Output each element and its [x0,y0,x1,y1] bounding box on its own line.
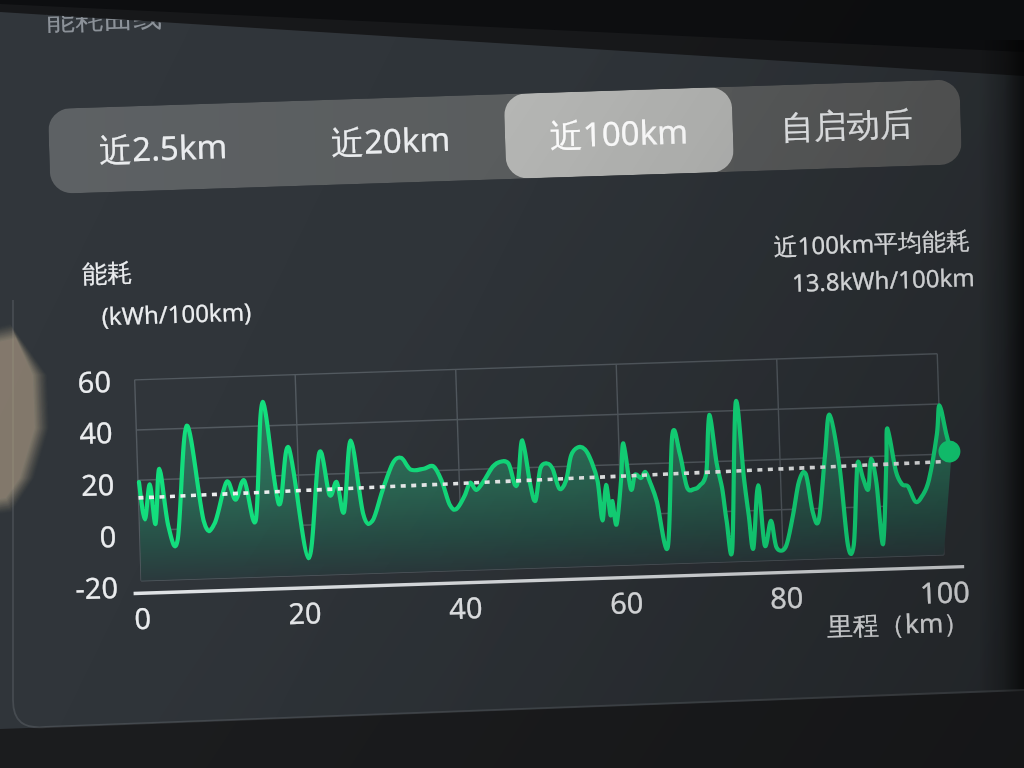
staticText: 60 [609,582,645,622]
staticText: 自启动后 [780,103,913,149]
button[interactable]: 近2.5km [48,101,278,194]
staticText: 近2.5km [98,123,229,172]
staticText: 近100km [549,108,690,158]
staticText: 13.8kWh/100km [791,260,975,299]
staticText: 0 [134,598,152,637]
staticText: 20 [288,592,323,632]
button[interactable]: 近100km [504,87,734,179]
staticText: -20 [75,567,119,607]
button[interactable]: 近20km [276,94,506,186]
staticText: 100 [919,571,970,612]
button[interactable]: 自启动后 [731,79,962,172]
staticText: 40 [79,412,114,452]
staticText: 能耗曲线 [45,0,162,39]
staticText: 0 [99,516,117,555]
staticText: 60 [77,361,112,401]
staticText: 80 [769,577,805,617]
staticText: 近20km [330,116,452,165]
staticText: 40 [449,587,484,627]
staticText: 里程（km） [826,603,970,644]
staticText: 20 [80,464,116,504]
staticText: (kWh/100km) [101,294,252,332]
staticText: 近100km平均能耗 [773,223,971,262]
staticText: 能耗 [82,257,133,290]
